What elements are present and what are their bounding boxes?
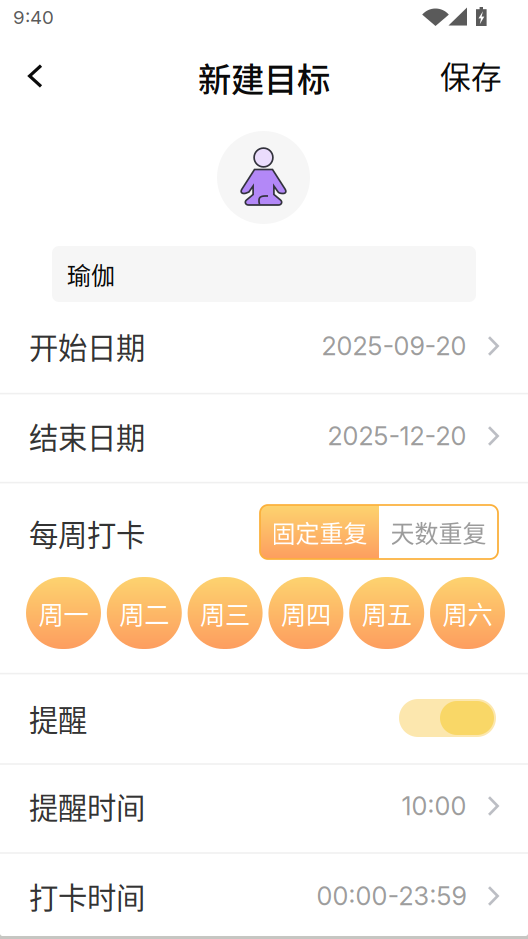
staticText: 周五	[362, 595, 412, 631]
staticText: 9:40	[13, 6, 54, 29]
staticText: 周六	[442, 595, 492, 631]
button[interactable]: 提醒开关	[399, 699, 496, 737]
staticText: 周一	[38, 595, 88, 631]
staticText: 瑜伽	[67, 257, 115, 291]
button[interactable]: 周四	[268, 577, 343, 649]
staticText: 提醒时间	[29, 785, 145, 827]
staticText: 10:00	[402, 791, 467, 821]
button[interactable]: 周二	[107, 577, 182, 649]
button[interactable]: 周一	[26, 577, 101, 649]
staticText: 周三	[200, 595, 250, 631]
button[interactable]: 周三	[188, 577, 263, 649]
staticText: 天数重复	[390, 515, 486, 549]
button[interactable]: 选择图标	[217, 131, 310, 224]
button[interactable]: 开始日期	[0, 301, 528, 391]
button[interactable]: 结束日期	[0, 391, 528, 481]
staticText: 保存	[440, 53, 502, 97]
staticText: 周四	[281, 595, 331, 631]
button[interactable]: 周六	[430, 577, 505, 649]
button[interactable]: 打卡时间	[0, 851, 528, 939]
staticText: 提醒	[29, 697, 87, 739]
staticText: 00:00-23:59	[317, 881, 467, 911]
staticText: 周二	[119, 595, 169, 631]
button[interactable]: 提醒时间	[0, 761, 528, 851]
staticText: 打卡时间	[29, 875, 145, 917]
staticText: 结束日期	[29, 415, 145, 457]
staticText: 新建目标	[198, 53, 330, 101]
button[interactable]: 返回	[8, 44, 63, 108]
button[interactable]: 周五	[349, 577, 424, 649]
staticText: 固定重复	[271, 515, 367, 549]
staticText: 2025-12-20	[328, 421, 467, 451]
button[interactable]: 天数重复	[379, 505, 498, 559]
button[interactable]: 固定重复	[260, 505, 379, 559]
staticText: 每周打卡	[29, 512, 145, 554]
button[interactable]: 保存	[425, 37, 517, 113]
staticText: 2025-09-20	[322, 331, 467, 361]
staticText: 开始日期	[29, 325, 145, 367]
